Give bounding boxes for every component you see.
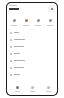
button[interactable] [10, 71, 57, 78]
button[interactable] [10, 57, 57, 64]
button[interactable]: Quick action [45, 17, 55, 29]
button[interactable] [10, 29, 57, 36]
button[interactable]: Quick action [33, 17, 43, 29]
button[interactable]: Profile [42, 82, 54, 95]
button[interactable]: Search [26, 82, 38, 95]
button[interactable]: Home [11, 82, 23, 95]
button[interactable]: Quick action [21, 17, 31, 29]
button[interactable]: Quick action [9, 17, 19, 29]
button[interactable]: Profile [48, 5, 55, 12]
button[interactable] [10, 43, 57, 50]
button[interactable] [10, 50, 57, 57]
button[interactable] [10, 36, 57, 43]
button[interactable] [10, 64, 57, 71]
